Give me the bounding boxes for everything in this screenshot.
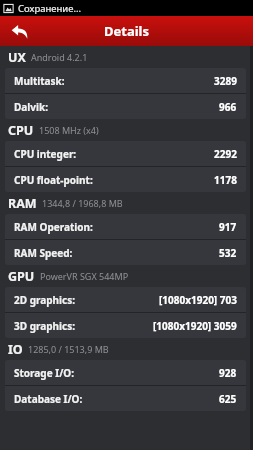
button[interactable]: Back (6, 18, 32, 44)
staticText: [1080x1920] 3059 (153, 319, 237, 333)
staticText: CPU integer: (14, 147, 77, 161)
staticText: [1080x1920] 703 (159, 293, 237, 307)
button[interactable]: CPU integer: (5, 141, 246, 166)
staticText: GPU (8, 268, 35, 285)
staticText: Database I/O: (14, 392, 83, 406)
staticText: 1178 (214, 173, 237, 187)
staticText: CPU float-point: (14, 173, 93, 187)
button[interactable]: Multitask: (5, 68, 246, 93)
staticText: 3289 (214, 74, 237, 88)
staticText: 532 (219, 246, 237, 260)
button[interactable]: Dalvik: (5, 94, 246, 119)
button[interactable]: 3D graphics: (5, 313, 246, 338)
staticText: UX (8, 49, 26, 66)
button[interactable]: Storage I/O: (5, 360, 246, 385)
staticText: Details (104, 22, 149, 40)
staticText: 2D graphics: (14, 293, 76, 307)
staticText: 1344,8 / 1968,8 MB (42, 197, 123, 209)
button[interactable]: RAM Speed: (5, 240, 246, 265)
staticText: RAM Operation: (14, 220, 93, 234)
staticText: IO (8, 341, 23, 358)
staticText: 1285,0 / 1513,9 MB (28, 343, 109, 355)
staticText: RAM Speed: (14, 246, 73, 260)
button[interactable]: 2D graphics: (5, 287, 246, 312)
staticText: Multitask: (14, 74, 65, 88)
staticText: 917 (219, 220, 237, 234)
staticText: Dalvik: (14, 100, 48, 114)
button[interactable]: RAM Operation: (5, 214, 246, 239)
staticText: 2292 (214, 147, 237, 161)
staticText: Сохранение... (18, 2, 82, 15)
staticText: Storage I/O: (14, 366, 75, 380)
staticText: 625 (219, 392, 237, 406)
staticText: 1508 MHz (x4) (39, 124, 99, 136)
staticText: RAM (8, 195, 37, 212)
button[interactable]: Database I/O: (5, 386, 246, 411)
staticText: Android 4.2.1 (31, 51, 88, 63)
staticText: 966 (219, 100, 237, 114)
staticText: 3D graphics: (14, 319, 76, 333)
staticText: PowerVR SGX 544MP (40, 270, 129, 282)
button[interactable]: CPU float-point: (5, 167, 246, 192)
staticText: CPU (8, 122, 34, 139)
staticText: 928 (219, 366, 237, 380)
